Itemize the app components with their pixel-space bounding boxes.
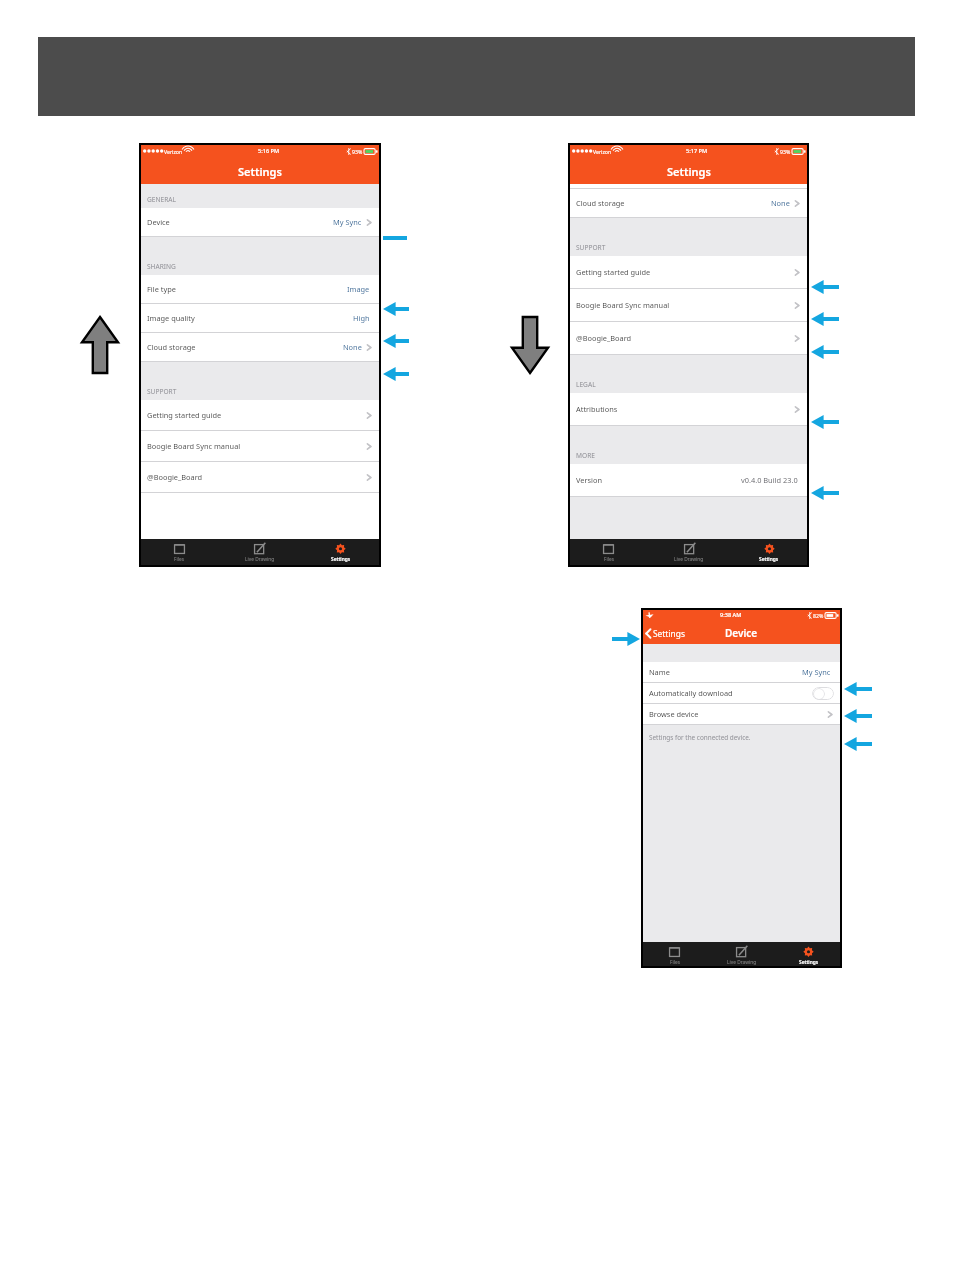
button[interactable]: Files bbox=[641, 942, 708, 968]
staticText: Settings bbox=[667, 164, 711, 179]
staticText: Cloud storage bbox=[576, 198, 625, 208]
button[interactable]: Getting started guide bbox=[568, 256, 809, 289]
staticText: Settings bbox=[331, 556, 351, 563]
staticText: Verizon bbox=[593, 148, 612, 155]
button[interactable]: Automatically download bbox=[641, 683, 842, 704]
staticText: My Sync bbox=[333, 217, 362, 227]
staticText: LEGAL bbox=[576, 380, 596, 389]
staticText: 93% bbox=[780, 148, 791, 155]
staticText: Files bbox=[670, 959, 680, 966]
staticText: 82% bbox=[813, 612, 824, 619]
staticText: 5:16 PM bbox=[258, 147, 280, 155]
staticText: SUPPORT bbox=[147, 387, 177, 396]
staticText: Settings for the connected device. bbox=[649, 733, 751, 742]
button[interactable]: @Boogie_Board bbox=[568, 322, 809, 355]
staticText: 9:38 AM bbox=[720, 611, 742, 619]
staticText: SHARING bbox=[147, 262, 176, 271]
staticText: Live Drawing bbox=[674, 556, 704, 563]
button[interactable]: Files bbox=[139, 539, 219, 567]
staticText: Image quality bbox=[147, 313, 195, 323]
staticText: 5:17 PM bbox=[686, 147, 708, 155]
button[interactable]: Back to Settings bbox=[645, 628, 685, 639]
staticText: Live Drawing bbox=[727, 959, 757, 966]
staticText: Automatically download bbox=[649, 688, 733, 698]
staticText: 93% bbox=[352, 148, 363, 155]
staticText: Settings bbox=[759, 556, 779, 563]
button[interactable]: Files bbox=[568, 539, 649, 567]
staticText: Settings bbox=[799, 959, 819, 966]
staticText: Getting started guide bbox=[576, 267, 651, 277]
staticText: Device bbox=[725, 626, 758, 640]
staticText: Verizon bbox=[164, 148, 183, 155]
staticText: Files bbox=[174, 556, 184, 563]
staticText: Cloud storage bbox=[147, 342, 196, 352]
staticText: Settings bbox=[653, 628, 685, 639]
button[interactable]: Settings bbox=[300, 539, 381, 567]
staticText: MORE bbox=[576, 451, 595, 460]
staticText: @Boogie_Board bbox=[147, 472, 203, 482]
staticText: Settings bbox=[238, 164, 282, 179]
staticText: GENERAL bbox=[147, 195, 176, 204]
button[interactable]: Version bbox=[568, 464, 809, 497]
button[interactable]: @Boogie_Board bbox=[139, 462, 381, 493]
button[interactable]: Live Drawing bbox=[219, 539, 300, 567]
staticText: SUPPORT bbox=[576, 243, 606, 252]
button[interactable]: Settings bbox=[729, 539, 809, 567]
staticText: Getting started guide bbox=[147, 410, 222, 420]
button[interactable]: Live Drawing bbox=[649, 539, 729, 567]
staticText: Attributions bbox=[576, 404, 618, 414]
staticText: My Sync bbox=[802, 667, 831, 677]
button[interactable]: Boogie Board Sync manual bbox=[568, 289, 809, 322]
staticText: v0.4.0 Build 23.0 bbox=[741, 475, 798, 485]
other: Automatically download toggle bbox=[812, 687, 834, 700]
staticText: None bbox=[343, 342, 362, 352]
button[interactable]: Live Drawing bbox=[708, 942, 775, 968]
button[interactable]: Settings bbox=[775, 942, 842, 968]
button[interactable]: Cloud storage bbox=[568, 188, 809, 218]
button[interactable]: Cloud storage bbox=[139, 333, 381, 362]
staticText: @Boogie_Board bbox=[576, 333, 632, 343]
staticText: File type bbox=[147, 284, 176, 294]
staticText: Device bbox=[147, 217, 170, 227]
button[interactable]: Name bbox=[641, 662, 842, 683]
staticText: Boogie Board Sync manual bbox=[576, 300, 670, 310]
staticText: Files bbox=[604, 556, 614, 563]
staticText: Live Drawing bbox=[245, 556, 275, 563]
button[interactable]: Device bbox=[139, 208, 381, 237]
staticText: High bbox=[353, 313, 370, 323]
button[interactable]: Image quality bbox=[139, 304, 381, 333]
staticText: Image bbox=[347, 284, 370, 294]
button[interactable]: File type bbox=[139, 275, 381, 304]
button[interactable]: Attributions bbox=[568, 393, 809, 426]
staticText: Boogie Board Sync manual bbox=[147, 441, 241, 451]
button[interactable]: Boogie Board Sync manual bbox=[139, 431, 381, 462]
staticText: Browse device bbox=[649, 709, 699, 719]
staticText: Name bbox=[649, 667, 670, 677]
staticText: None bbox=[771, 198, 790, 208]
staticText: Version bbox=[576, 475, 602, 485]
button[interactable]: Browse device bbox=[641, 704, 842, 725]
button[interactable]: Getting started guide bbox=[139, 400, 381, 431]
